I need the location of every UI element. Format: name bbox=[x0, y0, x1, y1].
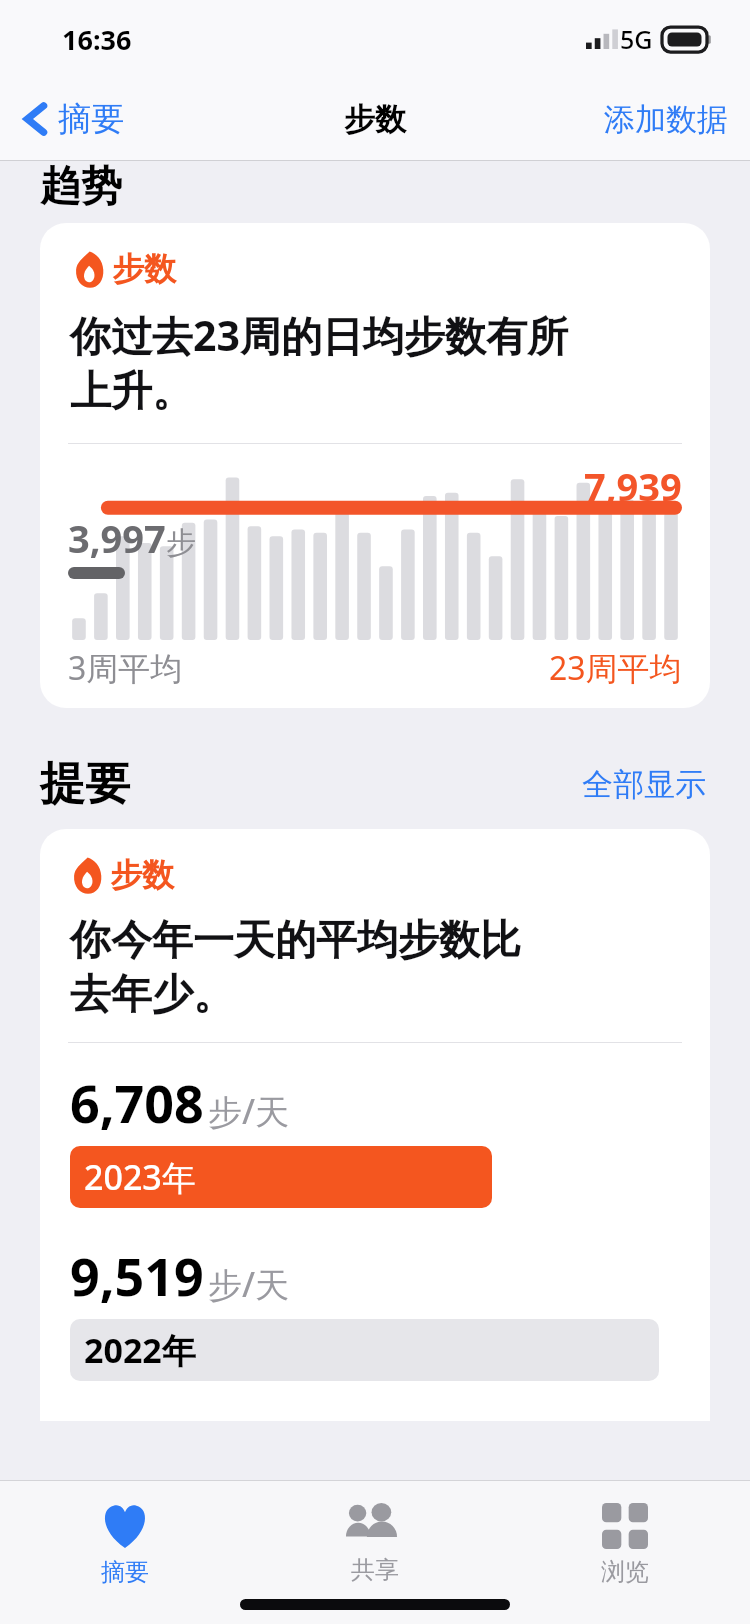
other: 共享 bbox=[346, 1503, 404, 1547]
staticText: 提要 bbox=[40, 756, 130, 813]
other: 浏览 bbox=[602, 1503, 648, 1549]
staticText: 23周平均 bbox=[549, 646, 682, 690]
staticText: 7,939 bbox=[584, 460, 682, 512]
staticText: 3周平均 bbox=[68, 646, 183, 690]
button[interactable]: 摘要 bbox=[18, 92, 130, 146]
staticText: 5G bbox=[620, 22, 653, 56]
button[interactable]: 添加数据 bbox=[596, 92, 736, 147]
staticText: 步数 bbox=[110, 855, 174, 895]
staticText: 3,997 bbox=[68, 512, 166, 564]
staticText: 步数 bbox=[344, 100, 406, 139]
staticText: 步 bbox=[166, 524, 196, 562]
button[interactable]: 全部显示 bbox=[578, 761, 710, 808]
staticText: 你今年一天的平均步数比 去年少。 bbox=[70, 915, 521, 1020]
staticText: 步数 bbox=[112, 249, 176, 289]
staticText: 趋势 bbox=[40, 161, 122, 209]
staticText: 16:36 bbox=[62, 21, 132, 58]
button[interactable]: 步数 bbox=[40, 223, 710, 708]
staticText: 6,708 bbox=[70, 1067, 204, 1138]
staticText: 9,519 bbox=[70, 1240, 204, 1311]
button[interactable]: 摘要 bbox=[0, 1497, 250, 1593]
staticText: 摘要 bbox=[101, 1557, 149, 1587]
staticText: 步/天 bbox=[208, 1261, 290, 1307]
other: 摘要 bbox=[99, 1503, 151, 1549]
staticText: 2022年 bbox=[84, 1327, 196, 1373]
button[interactable]: 步数 bbox=[40, 829, 710, 1421]
staticText: 你过去23周的日均步数有所 上升。 bbox=[70, 307, 568, 417]
staticText: 步/天 bbox=[208, 1088, 290, 1134]
staticText: 浏览 bbox=[601, 1557, 649, 1587]
button[interactable]: 共享 bbox=[250, 1497, 500, 1591]
button[interactable]: 浏览 bbox=[500, 1497, 750, 1593]
staticText: 摘要 bbox=[58, 98, 124, 140]
staticText: 共享 bbox=[351, 1555, 399, 1585]
staticText: 2023年 bbox=[84, 1154, 196, 1200]
